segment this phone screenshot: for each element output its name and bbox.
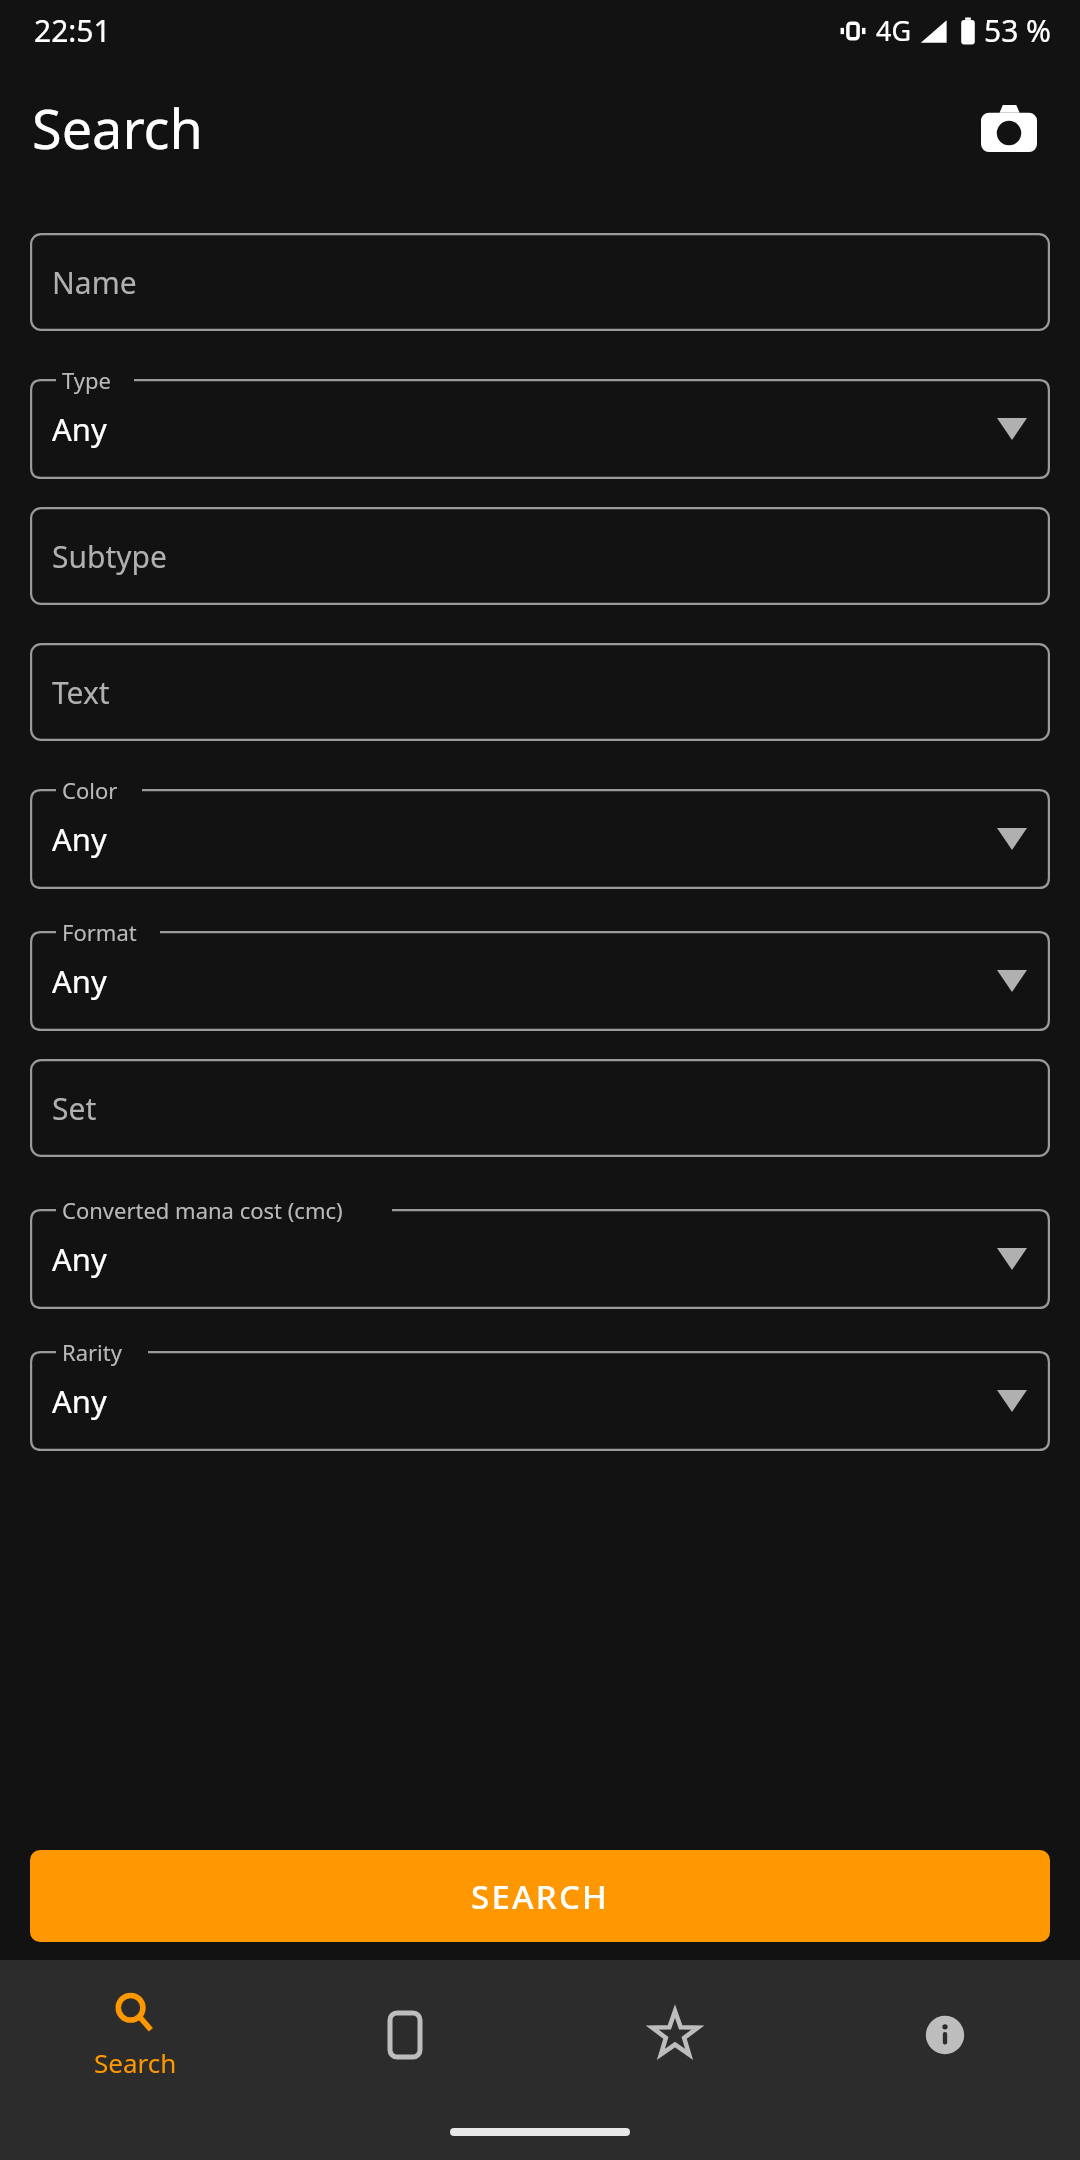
button[interactable]: Name <box>30 233 1050 331</box>
staticText: SEARCH <box>471 1874 609 1919</box>
staticText: Type <box>62 365 111 395</box>
button[interactable]: Subtype <box>30 507 1050 605</box>
button[interactable]: SEARCH <box>30 1850 1050 1942</box>
staticText: Color <box>62 775 118 805</box>
staticText: Name <box>52 262 137 303</box>
button[interactable]: Any <box>30 931 1050 1031</box>
button[interactable]: Favourites <box>540 1960 810 2110</box>
staticText: Text <box>52 672 110 713</box>
staticText: Subtype <box>52 536 167 577</box>
staticText: Any <box>52 818 107 860</box>
button[interactable]: Text <box>30 643 1050 741</box>
staticText: Search <box>94 2045 177 2080</box>
button[interactable]: Any <box>30 1209 1050 1309</box>
staticText: 53 % <box>984 10 1052 51</box>
staticText: 22:51 <box>34 10 111 51</box>
button[interactable]: Cards <box>270 1960 540 2110</box>
staticText: Any <box>52 1238 107 1280</box>
staticText: Any <box>52 1380 107 1422</box>
button[interactable]: Any <box>30 789 1050 889</box>
button[interactable]: About <box>810 1960 1080 2110</box>
staticText: Search <box>32 91 203 165</box>
button[interactable]: Search <box>0 1960 270 2110</box>
button[interactable]: Set <box>30 1059 1050 1157</box>
staticText: Converted mana cost (cmc) <box>62 1195 343 1225</box>
staticText: 4G <box>876 12 912 49</box>
staticText: Rarity <box>62 1337 122 1367</box>
button[interactable]: Any <box>30 1351 1050 1451</box>
staticText: Any <box>52 408 107 450</box>
staticText: Any <box>52 960 107 1002</box>
staticText: Set <box>52 1088 97 1129</box>
button[interactable]: Scan card with camera <box>974 93 1044 163</box>
button[interactable]: Any <box>30 379 1050 479</box>
staticText: Format <box>62 917 137 947</box>
